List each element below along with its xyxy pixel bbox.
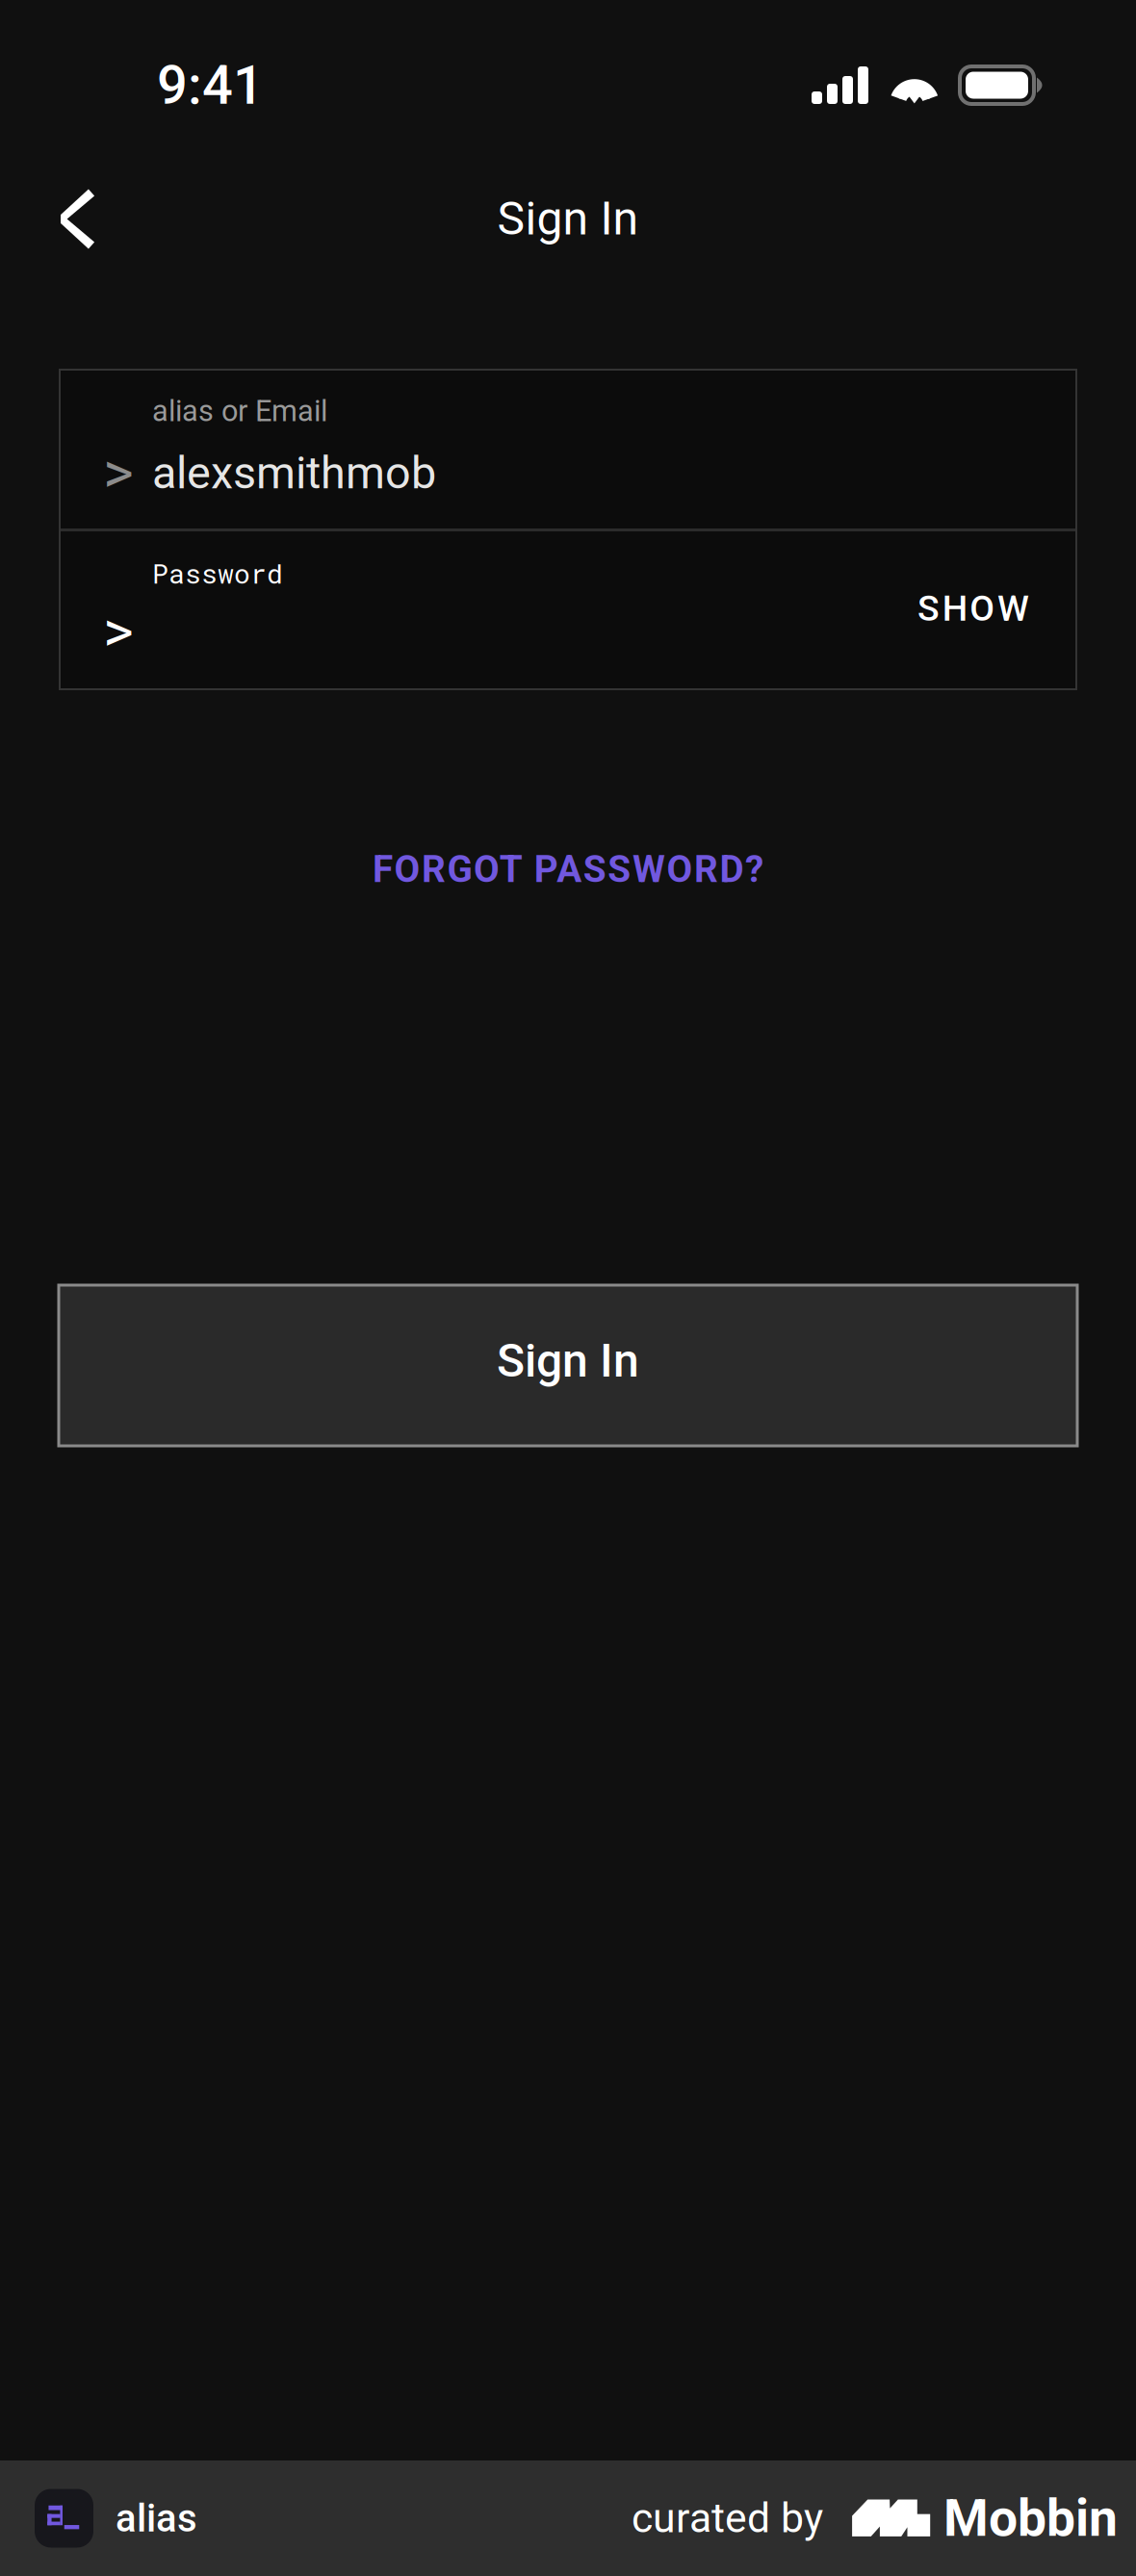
staticText: Sign In <box>497 191 639 246</box>
staticText: > <box>102 592 136 667</box>
staticText: Mobbin <box>943 2488 1118 2548</box>
button[interactable]: SHOW <box>891 565 1055 652</box>
staticText: curated by <box>632 2494 823 2542</box>
staticText: > <box>102 433 136 508</box>
staticText: Sign In <box>497 1334 639 1388</box>
staticText: FORGOT PASSWORD? <box>372 847 764 891</box>
button[interactable]: FORGOT PASSWORD? <box>0 831 1136 908</box>
button[interactable]: Sign In <box>59 1285 1077 1446</box>
button[interactable]: Back <box>0 170 121 267</box>
staticText: alias or Email <box>152 394 327 428</box>
staticText: Password <box>152 555 283 591</box>
staticText: alexsmithmob <box>152 447 436 499</box>
staticText: SHOW <box>918 587 1029 629</box>
staticText: 9:41 <box>157 54 264 117</box>
staticText: alias <box>116 2496 197 2541</box>
